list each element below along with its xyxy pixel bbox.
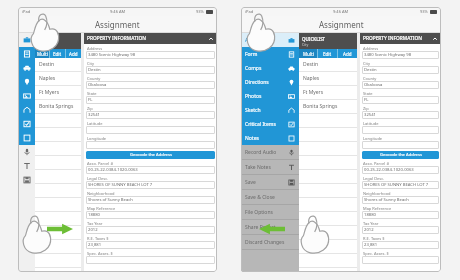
button[interactable]: 00-2S-22-0384-1020-0063 [362, 166, 439, 174]
staticText: iPad [245, 9, 254, 14]
button[interactable]: 3480 Scenic Highway 98 [362, 51, 439, 59]
button[interactable]: 00-2S-22-0384-1020-0063 [86, 166, 215, 174]
staticText: Latitude [87, 121, 103, 126]
button[interactable]: Okaloosa [86, 81, 215, 89]
button[interactable]: Sketch [241, 103, 299, 117]
staticText: Longitude [363, 136, 383, 141]
button[interactable]: Save & Close [241, 190, 299, 204]
staticText: Neighborhood [87, 191, 115, 196]
staticText: Latitude [363, 121, 379, 126]
button[interactable]: Add [66, 49, 81, 58]
button[interactable]: SHORES OF SUNNY BEACH LOT 7 [362, 181, 439, 189]
staticText: Okaloosa [88, 82, 107, 88]
button[interactable]: Sketch [18, 103, 35, 117]
button[interactable]: 3480 Scenic Highway 98 [86, 51, 215, 59]
button[interactable]: Comps [18, 61, 35, 75]
button[interactable]: SHORES OF SUNNY BEACH LOT 7 [86, 181, 215, 189]
button[interactable]: Form [18, 47, 35, 61]
button[interactable]: Ft Myers [35, 86, 81, 99]
staticText: 32541 [88, 112, 100, 118]
staticText: PROPERTY INFORMATION [87, 35, 146, 42]
button[interactable]: Critical Items [18, 117, 35, 131]
button[interactable]: 18880 [86, 211, 215, 219]
staticText: Take Notes [245, 164, 288, 171]
button[interactable]: Destin [299, 58, 357, 71]
button[interactable]: 18880 [362, 211, 439, 219]
button[interactable]: Photos [241, 89, 299, 103]
button[interactable]: Naples [299, 72, 357, 85]
button[interactable]: Destin [362, 66, 439, 74]
staticText: Asso. Parcel # [363, 161, 389, 166]
button[interactable]: Directions [18, 75, 35, 89]
button[interactable]: Notes [241, 131, 299, 145]
button[interactable]: Form [241, 47, 299, 61]
staticText: Ft Myers [39, 89, 60, 96]
staticText: Legal Desc. [363, 176, 385, 181]
button[interactable]: Comps [241, 61, 299, 75]
button[interactable]: Edit [318, 49, 337, 58]
button[interactable]: PROPERTY INFORMATION [360, 33, 441, 44]
button[interactable] [86, 256, 215, 264]
button[interactable]: Naples [35, 72, 81, 85]
button[interactable]: FL [362, 96, 439, 104]
staticText: 00-2S-22-0384-1020-0063 [88, 167, 138, 173]
staticText: Bonita Springs [303, 103, 338, 110]
button[interactable] [362, 256, 439, 264]
button[interactable]: Geocode the Address [86, 151, 215, 159]
button[interactable]: Shores of Sunny Beach [86, 196, 215, 204]
staticText: Neighborhood [363, 191, 391, 196]
staticText: Legal Desc. [87, 176, 109, 181]
button[interactable]: Okaloosa [362, 81, 439, 89]
button[interactable]: Destin [35, 58, 81, 71]
staticText: Assignment [319, 19, 364, 30]
staticText: 93% [196, 9, 204, 14]
staticText: Zip [363, 106, 369, 111]
button[interactable]: Save [241, 175, 299, 189]
button[interactable] [86, 126, 215, 134]
staticText: Edit [323, 51, 332, 57]
button[interactable]: Directions [241, 75, 299, 89]
staticText: Form [245, 51, 288, 58]
staticText: Okaloosa [364, 82, 383, 88]
button[interactable] [86, 141, 215, 149]
button[interactable]: Take Notes [18, 159, 35, 173]
button[interactable]: 23,881 [86, 241, 215, 249]
button[interactable]: Take Notes [241, 160, 299, 174]
button[interactable]: Save [18, 173, 35, 187]
button[interactable]: 32541 [86, 111, 215, 119]
button[interactable]: Critical Items [241, 117, 299, 131]
button[interactable]: 2012 [362, 226, 439, 234]
staticText: R.E. Taxes $ [87, 236, 109, 241]
staticText: QUICKLIST [302, 36, 326, 42]
button[interactable] [362, 141, 439, 149]
button[interactable]: Bonita Springs [299, 100, 357, 113]
staticText: County [363, 76, 377, 81]
button[interactable]: Ft Myers [299, 86, 357, 99]
button[interactable]: 23,881 [362, 241, 439, 249]
button[interactable]: Multi [35, 49, 49, 58]
button[interactable]: Destin [86, 66, 215, 74]
button[interactable]: Discard Changes [241, 235, 299, 249]
button[interactable]: Edit [50, 49, 65, 58]
staticText: City [87, 61, 95, 66]
button[interactable]: Share Report [241, 220, 299, 234]
button[interactable] [362, 126, 439, 134]
button[interactable]: Assignment [241, 33, 299, 47]
button[interactable]: Bonita Springs [35, 100, 81, 113]
button[interactable]: PROPERTY INFORMATION [84, 33, 217, 44]
button[interactable]: Photos [18, 89, 35, 103]
button[interactable]: Assignment [18, 33, 35, 47]
button[interactable]: Add [338, 49, 357, 58]
button[interactable]: File Options [241, 205, 299, 219]
button[interactable]: Record Audio [241, 145, 299, 159]
button[interactable]: 32541 [362, 111, 439, 119]
button[interactable]: Shores of Sunny Beach [362, 196, 439, 204]
button[interactable]: Geocode the Address [362, 151, 439, 159]
button[interactable]: FL [86, 96, 215, 104]
staticText: Naples [39, 75, 56, 82]
button[interactable]: Notes [18, 131, 35, 145]
button[interactable]: Multi [299, 49, 317, 58]
button[interactable]: 2012 [86, 226, 215, 234]
button[interactable]: Record Audio [18, 145, 35, 159]
